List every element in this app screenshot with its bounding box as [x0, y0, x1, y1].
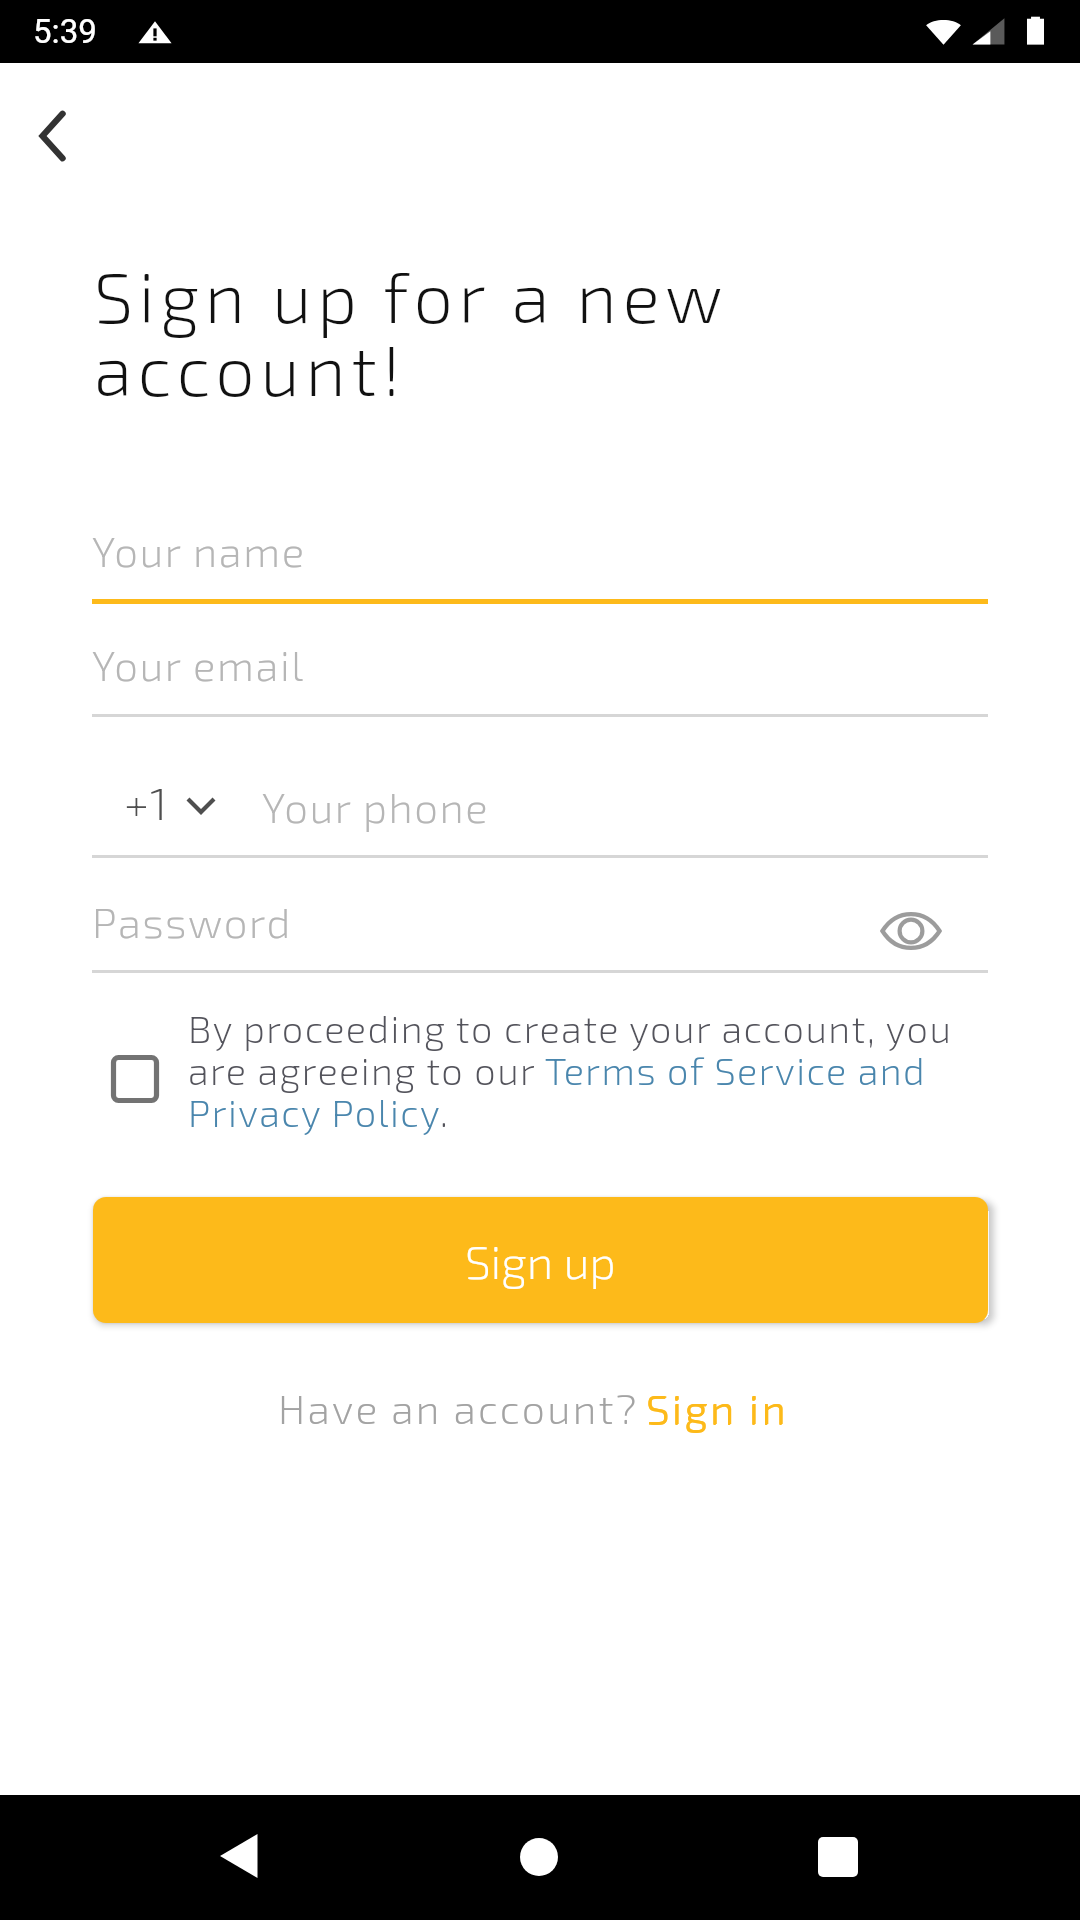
- staticText: Your email: [92, 639, 305, 689]
- button[interactable]: Sign up: [93, 1197, 988, 1323]
- button[interactable]: Select country code: [176, 780, 226, 830]
- button[interactable]: Sign in: [646, 1383, 788, 1432]
- button[interactable]: Home: [504, 1822, 574, 1892]
- staticText: By proceeding to create your account, yo…: [188, 1005, 1018, 1135]
- button[interactable]: Recent apps: [803, 1822, 873, 1892]
- staticText: Sign in: [646, 1383, 788, 1432]
- staticText: 5:39: [33, 12, 97, 51]
- staticText: +1: [124, 775, 169, 829]
- button[interactable]: Back: [204, 1821, 274, 1891]
- button[interactable]: Show password: [863, 883, 959, 979]
- staticText: Sign up: [465, 1233, 616, 1288]
- staticText: Your phone: [262, 781, 490, 831]
- staticText: Sign in: [647, 1383, 789, 1432]
- staticText: Have an account?: [278, 1383, 639, 1432]
- staticText: Password: [92, 896, 292, 946]
- staticText: Sign in: [646, 1384, 788, 1433]
- button[interactable]: Back: [18, 100, 90, 172]
- staticText: Sign up for a new account!: [94, 253, 814, 410]
- button[interactable]: Accept terms and conditions: [101, 1045, 169, 1113]
- staticText: Your name: [92, 525, 306, 575]
